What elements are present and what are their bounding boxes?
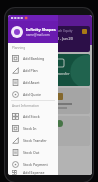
staticText: Stock Transfer bbox=[23, 138, 47, 143]
button[interactable]: Stock Out bbox=[8, 146, 58, 158]
staticText: Add Plan bbox=[23, 68, 38, 73]
staticText: Cash Equity bbox=[55, 29, 73, 33]
staticText: Stock Out bbox=[23, 150, 40, 155]
other: Add Stock bbox=[12, 113, 19, 120]
other: Stock In bbox=[12, 125, 19, 132]
button[interactable]: Add Plan bbox=[8, 64, 58, 76]
other: Stock Transfer bbox=[12, 137, 19, 144]
button[interactable]: Stock Transfer bbox=[8, 134, 58, 146]
other: Add Plan bbox=[12, 67, 19, 74]
button[interactable]: Infinity Shapes bbox=[8, 21, 58, 43]
button[interactable]: Stock Payment bbox=[8, 158, 58, 170]
button[interactable]: Transfer bbox=[52, 54, 90, 86]
button[interactable]: Add Quote bbox=[8, 88, 58, 100]
staticText: name@mail.com bbox=[26, 33, 50, 37]
staticText: Stock Payment bbox=[23, 162, 48, 167]
staticText: Add Expense bbox=[23, 170, 45, 175]
staticText: Asset Information bbox=[12, 104, 39, 108]
button[interactable]: Add Asset bbox=[8, 76, 58, 88]
button[interactable]: Add Stock bbox=[8, 110, 58, 122]
other: Add Banking bbox=[12, 55, 19, 62]
other: Add Asset bbox=[12, 79, 19, 86]
button[interactable] bbox=[52, 88, 90, 114]
other: Add Expense bbox=[12, 170, 19, 175]
staticText: Add Asset bbox=[23, 80, 40, 85]
button[interactable]: Stock In bbox=[8, 122, 58, 134]
staticText: Transfer bbox=[56, 71, 70, 76]
button[interactable]: Add Expense bbox=[8, 170, 58, 175]
button[interactable]: Cash Equity bbox=[52, 26, 90, 52]
button[interactable] bbox=[52, 116, 90, 146]
staticText: Add Quote bbox=[23, 92, 41, 97]
staticText: Infinity Shapes bbox=[26, 27, 56, 32]
staticText: Stock In bbox=[23, 126, 37, 131]
other: Stock Out bbox=[12, 149, 19, 156]
button[interactable]: Add Banking bbox=[8, 52, 58, 64]
staticText: Add Stock bbox=[23, 114, 40, 119]
other: Add Quote bbox=[12, 91, 19, 98]
other: Stock Payment bbox=[12, 161, 19, 168]
staticText: Add Banking bbox=[23, 56, 45, 61]
staticText: 08 - Jun 20 bbox=[55, 36, 73, 41]
staticText: Planning bbox=[12, 46, 26, 50]
